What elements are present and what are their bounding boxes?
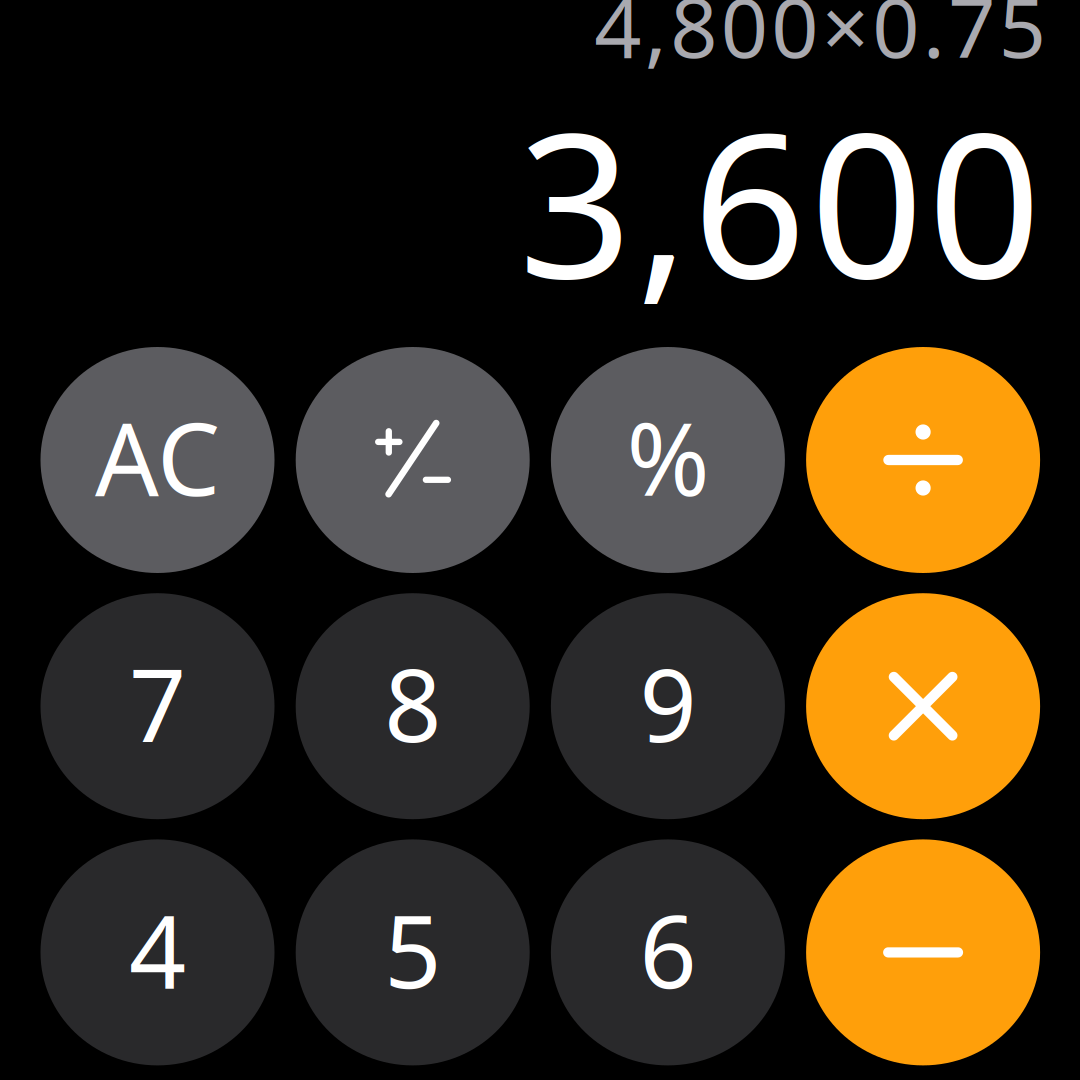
button[interactable]: 4 bbox=[40, 839, 274, 1065]
staticText: 4,800×0.75 bbox=[594, 0, 1046, 80]
staticText: 8 bbox=[384, 637, 441, 770]
staticText: 9 bbox=[639, 637, 696, 770]
button[interactable]: 5 bbox=[296, 839, 530, 1065]
staticText: % bbox=[626, 391, 709, 523]
staticText: 3,600 bbox=[518, 69, 1041, 333]
button[interactable]: Divide bbox=[806, 347, 1040, 573]
staticText: AC bbox=[95, 391, 220, 523]
button[interactable]: % bbox=[551, 347, 785, 573]
button[interactable]: Subtract bbox=[806, 839, 1040, 1065]
button[interactable]: 7 bbox=[40, 593, 274, 819]
button[interactable]: AC bbox=[40, 347, 274, 573]
button[interactable]: 8 bbox=[296, 593, 530, 819]
staticText: 7 bbox=[129, 637, 186, 770]
button[interactable]: Multiply bbox=[806, 593, 1040, 819]
staticText: 5 bbox=[384, 883, 441, 1016]
button[interactable]: Plus minus bbox=[296, 347, 530, 573]
button[interactable]: 6 bbox=[551, 839, 785, 1065]
staticText: 6 bbox=[639, 883, 696, 1016]
staticText: 4 bbox=[129, 883, 186, 1016]
button[interactable]: 9 bbox=[551, 593, 785, 819]
